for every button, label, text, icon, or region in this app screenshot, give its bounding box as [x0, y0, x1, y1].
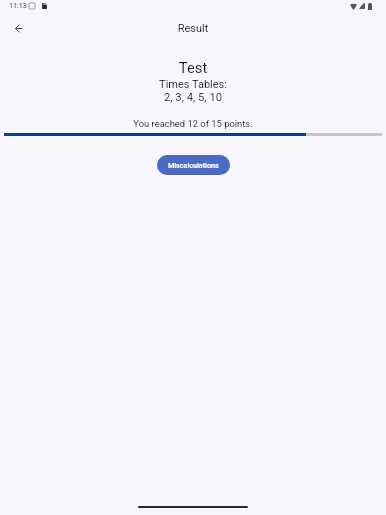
- staticText: 2, 3, 4, 5, 10: [0, 91, 386, 104]
- staticText: Miscalculations: [168, 161, 219, 169]
- staticText: You reached 12 of 15 points.: [0, 118, 386, 129]
- staticText: 11:13: [9, 2, 27, 10]
- staticText: Result: [0, 22, 386, 35]
- button[interactable]: Back: [6, 16, 30, 40]
- staticText: Test: [0, 59, 386, 76]
- button[interactable]: Miscalculations: [157, 155, 230, 175]
- staticText: Times Tables:: [0, 78, 386, 91]
